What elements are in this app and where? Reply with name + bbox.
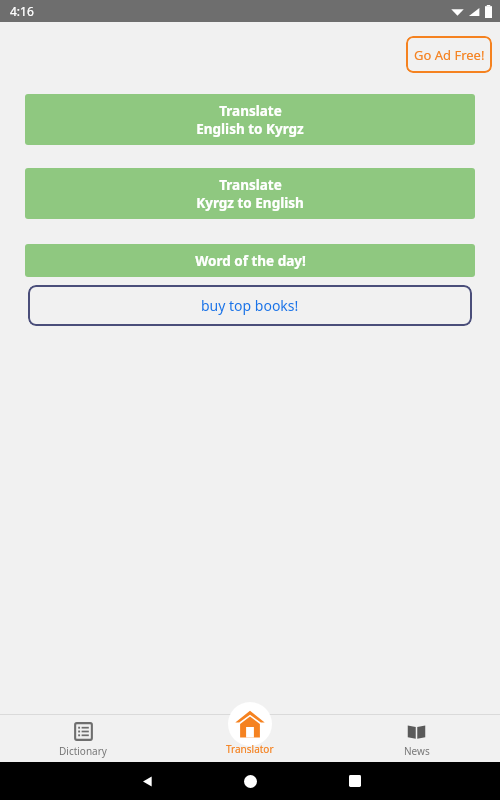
other: Home: [244, 775, 257, 788]
staticText: Word of the day!: [195, 252, 306, 270]
staticText: 4:16: [10, 3, 34, 19]
button[interactable]: Translator: [166, 700, 333, 762]
staticText: Kyrgz to English: [196, 194, 304, 212]
staticText: Translate: [219, 102, 282, 120]
button[interactable]: Translate: [25, 168, 475, 219]
staticText: English to Kyrgz: [196, 120, 304, 138]
button[interactable]: buy top books!: [28, 285, 472, 326]
other: Translator: [235, 709, 265, 739]
staticText: Dictionary: [59, 744, 107, 758]
button[interactable]: News: [333, 700, 500, 762]
staticText: Translate: [219, 176, 282, 194]
staticText: buy top books!: [201, 296, 299, 315]
staticText: Translator: [226, 742, 274, 756]
staticText: Go Ad Free!: [414, 46, 485, 64]
button[interactable]: Dictionary: [0, 700, 166, 762]
other: News: [407, 722, 426, 741]
button[interactable]: Translate: [25, 94, 475, 145]
other: Recents: [349, 775, 361, 787]
staticText: News: [404, 744, 430, 758]
button[interactable]: Go Ad Free!: [406, 36, 492, 73]
other: Back: [140, 774, 155, 789]
other: Dictionary: [74, 722, 93, 741]
button[interactable]: Word of the day!: [25, 244, 475, 277]
